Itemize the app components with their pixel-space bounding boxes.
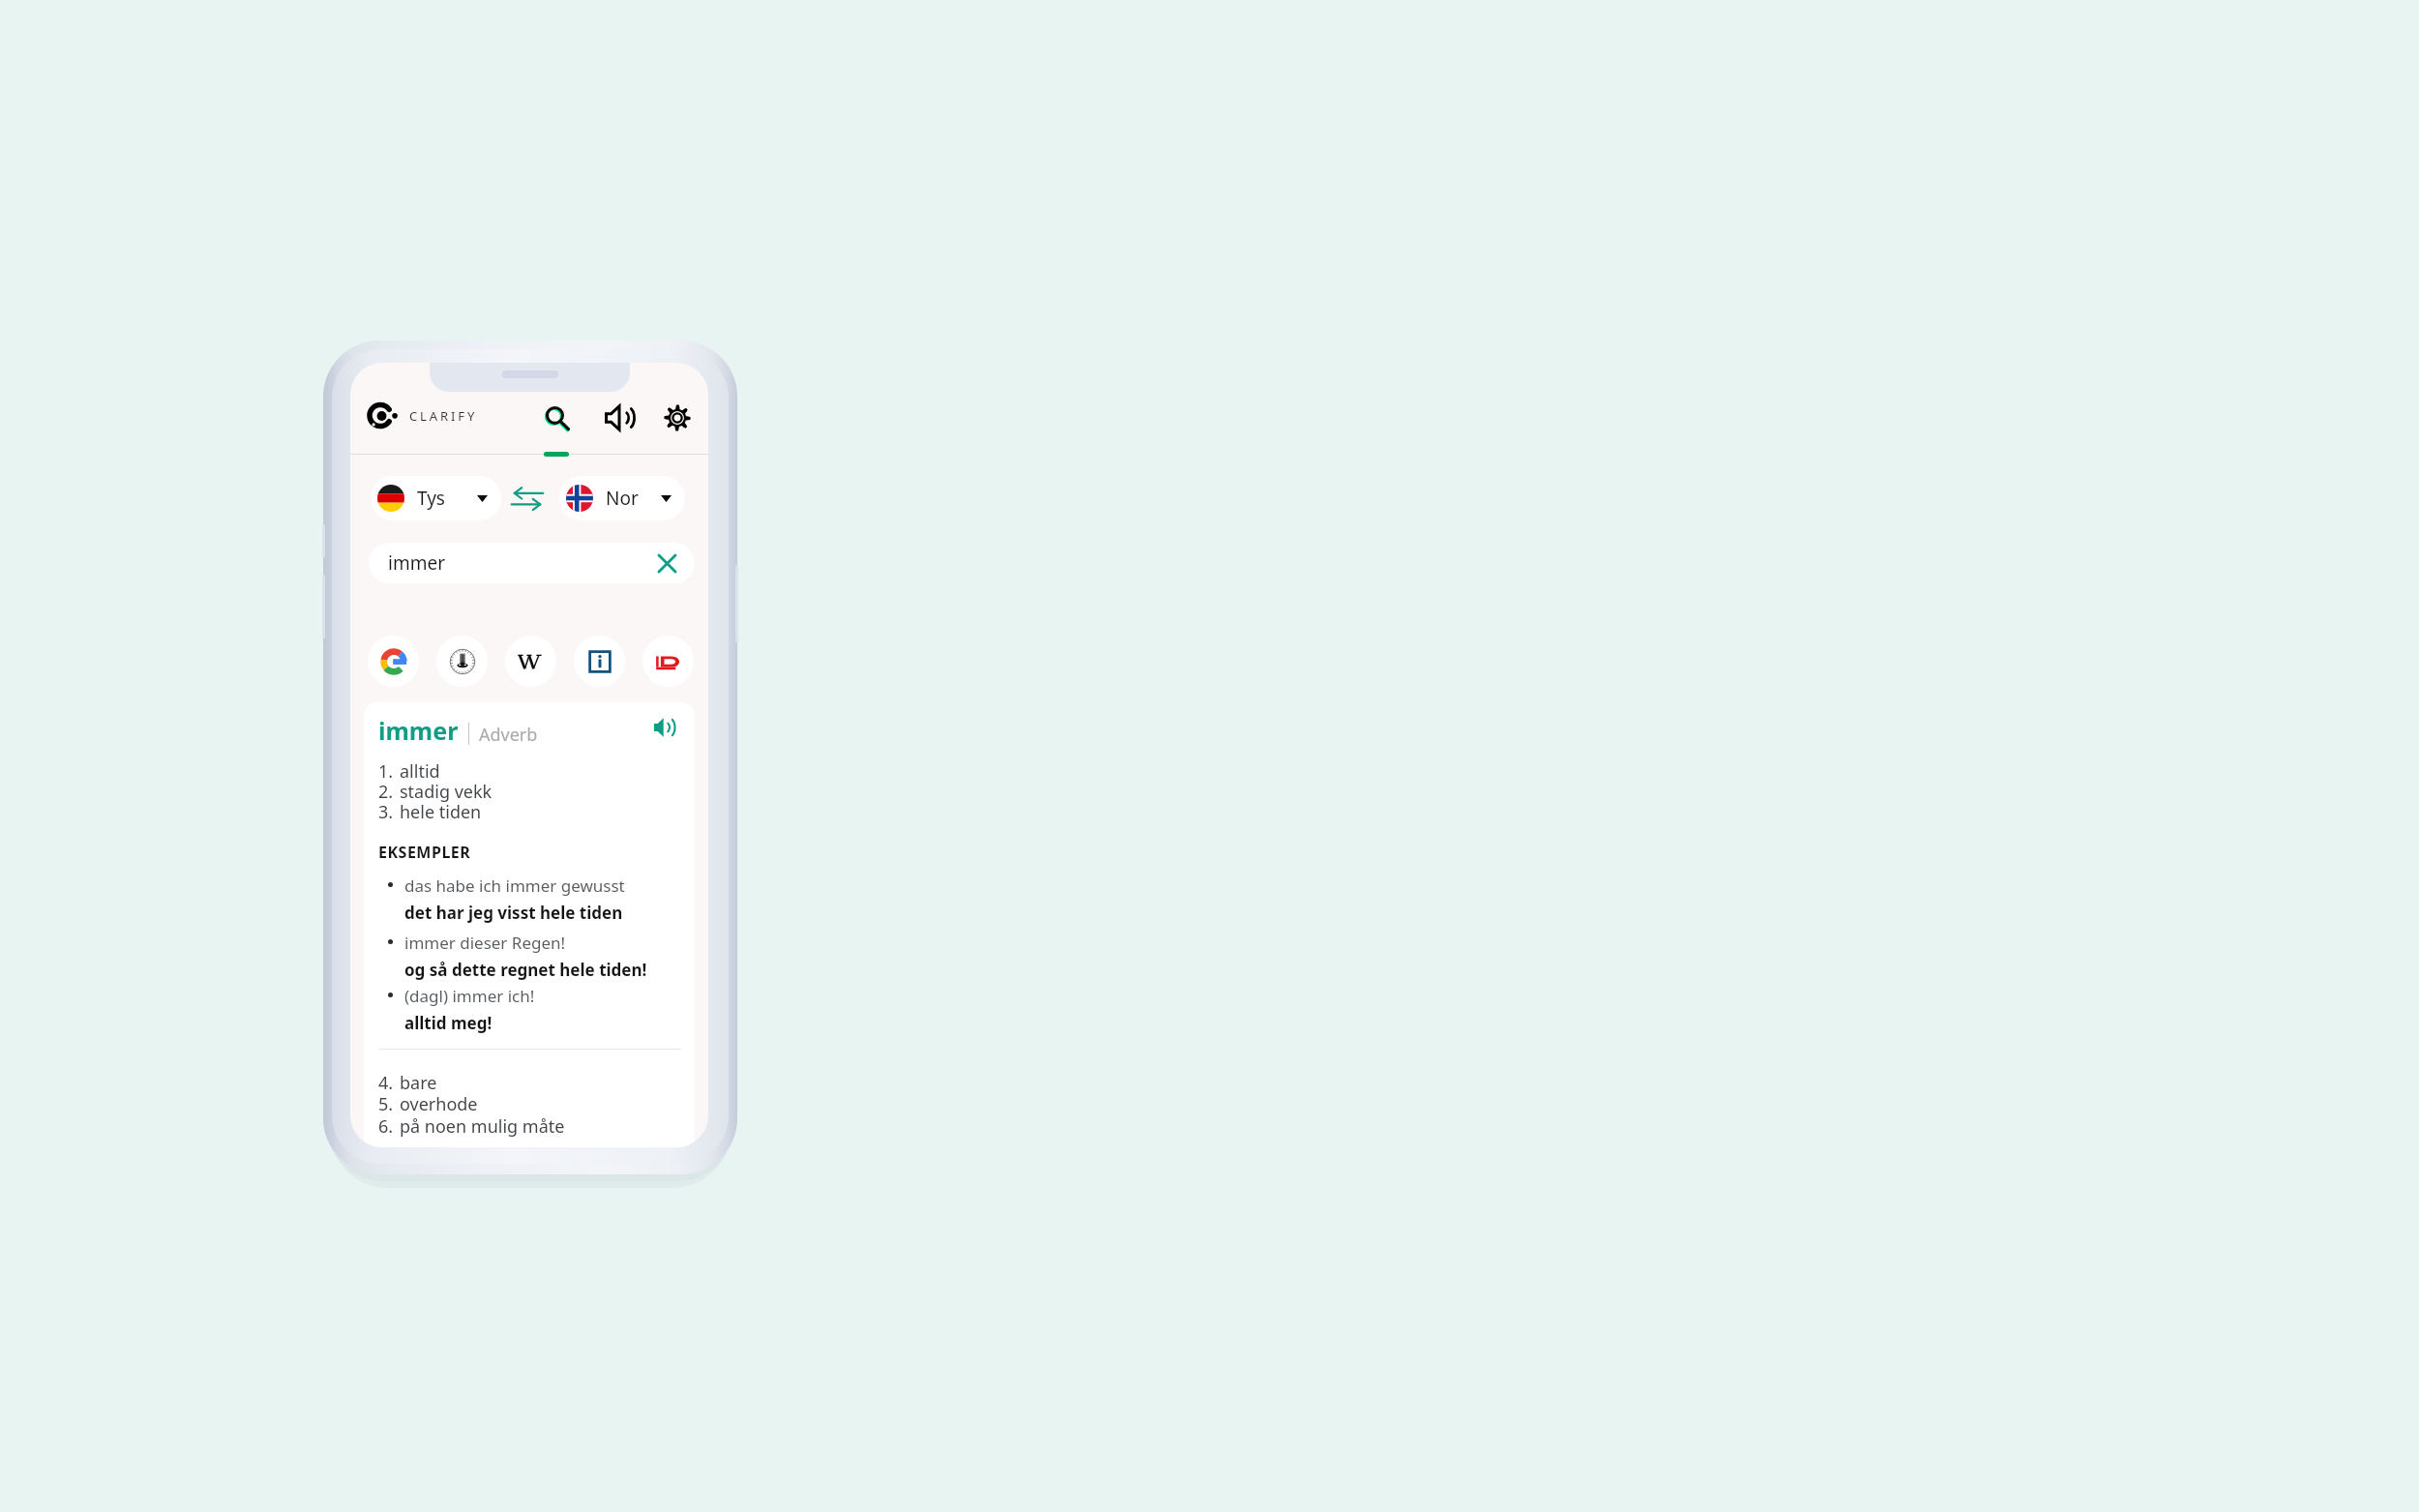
button[interactable]: Wikipedia (505, 636, 556, 687)
staticText: alltid (400, 759, 440, 784)
button[interactable]: Info (574, 636, 625, 687)
staticText: (dagl) immer ich! (404, 985, 535, 1007)
staticText: bare (400, 1071, 437, 1095)
staticText: das habe ich immer gewusst (404, 875, 625, 897)
staticText: på noen mulig måte (400, 1114, 565, 1139)
button[interactable]: Settings (656, 397, 699, 439)
button[interactable]: Dictionary (642, 636, 694, 687)
button[interactable]: Search (535, 397, 578, 439)
button[interactable]: University (436, 636, 488, 687)
staticText: CLARIFY (409, 407, 478, 425)
staticText: 3. (378, 800, 394, 824)
staticText: 6. (378, 1114, 394, 1139)
button[interactable]: Google (368, 636, 419, 687)
staticText: 4. (378, 1071, 394, 1095)
button[interactable]: Nor (559, 476, 685, 520)
staticText: Nor (606, 486, 639, 511)
button[interactable]: Pronounce (598, 397, 641, 439)
staticText: 5. (378, 1092, 394, 1116)
button[interactable]: immer (369, 543, 695, 583)
button[interactable]: Play pronunciation (649, 712, 680, 743)
staticText: 2. (378, 780, 394, 804)
staticText: Tys (417, 486, 445, 511)
staticText: immer (378, 714, 459, 747)
staticText: immer (388, 550, 445, 576)
staticText: hele tiden (400, 800, 482, 824)
staticText: immer dieser Regen! (404, 932, 566, 954)
staticText: overhode (400, 1092, 478, 1116)
staticText: stadig vekk (400, 780, 493, 804)
staticText: EKSEMPLER (378, 842, 471, 863)
staticText: Adverb (479, 723, 538, 747)
staticText: alltid meg! (404, 1012, 493, 1034)
staticText: og så dette regnet hele tiden! (404, 959, 647, 981)
button[interactable]: Swap languages (507, 483, 548, 514)
button[interactable]: CLARIFY (367, 400, 478, 431)
staticText: det har jeg visst hele tiden (404, 902, 623, 924)
staticText: 1. (378, 759, 394, 784)
button[interactable]: Tys (371, 476, 501, 520)
button[interactable]: Clear search (654, 550, 679, 576)
